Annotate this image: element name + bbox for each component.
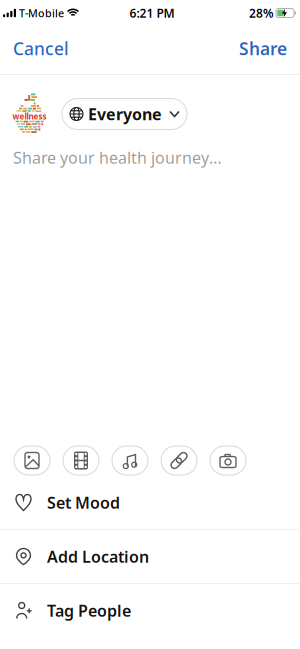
button[interactable]: Tag People	[0, 584, 300, 637]
staticText: Cancel	[13, 37, 69, 60]
button[interactable]: Take photo	[210, 446, 246, 475]
button[interactable]: Add Location	[0, 530, 300, 583]
button[interactable]: Add link	[161, 446, 197, 475]
staticText: Add Location	[47, 546, 149, 567]
staticText: wellness	[12, 111, 46, 122]
button[interactable]: Add photo	[14, 446, 50, 475]
staticText: 28%	[249, 5, 274, 21]
button[interactable]: Set Mood	[0, 476, 300, 529]
staticText: Everyone	[88, 103, 162, 125]
staticText: Share your health journey…	[13, 147, 222, 168]
staticText: T-Mobile	[19, 6, 64, 20]
button[interactable]: Share	[239, 37, 287, 60]
button[interactable]: Audience: Everyone	[62, 98, 187, 129]
staticText: 6:21 PM	[129, 5, 174, 21]
staticText: Share	[239, 37, 287, 60]
staticText: Set Mood	[47, 492, 120, 513]
button[interactable]: Add music	[112, 446, 148, 475]
button[interactable]: Cancel	[13, 37, 69, 60]
button[interactable]: Add video	[63, 446, 99, 475]
staticText: Tag People	[47, 600, 131, 621]
